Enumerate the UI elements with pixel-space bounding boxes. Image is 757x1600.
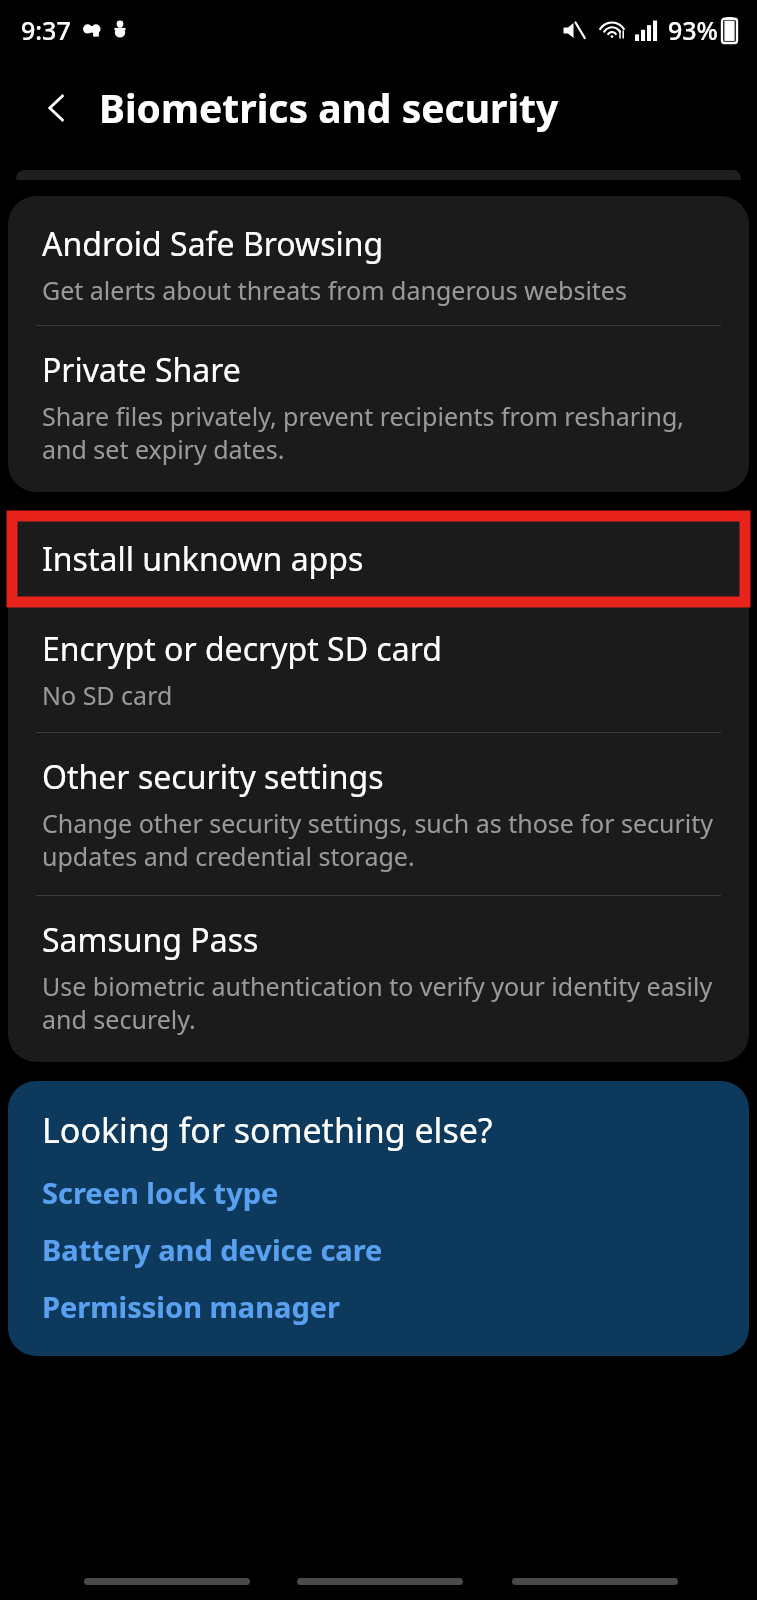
staticText: Battery and device care bbox=[42, 1230, 383, 1269]
staticText: Use biometric authentication to verify y… bbox=[42, 969, 715, 1036]
staticText: Looking for something else? bbox=[42, 1107, 493, 1153]
staticText: Get alerts about threats from dangerous … bbox=[42, 273, 627, 307]
staticText: Other security settings bbox=[42, 755, 384, 799]
button[interactable]: Android Safe Browsing bbox=[8, 196, 749, 325]
staticText: No SD card bbox=[42, 678, 173, 712]
staticText: Screen lock type bbox=[42, 1173, 279, 1212]
button[interactable]: Other security settings bbox=[8, 733, 749, 895]
staticText: Permission manager bbox=[42, 1287, 341, 1326]
staticText: Biometrics and security bbox=[99, 81, 559, 134]
button[interactable]: Permission manager bbox=[42, 1287, 715, 1326]
staticText: Private Share bbox=[42, 348, 241, 392]
button[interactable]: Encrypt or decrypt SD card bbox=[8, 607, 749, 732]
button[interactable]: Private Share bbox=[8, 326, 749, 492]
button[interactable]: Back bbox=[26, 77, 88, 139]
button[interactable]: Screen lock type bbox=[42, 1173, 715, 1212]
button[interactable]: Battery and device care bbox=[42, 1230, 715, 1269]
staticText: Change other security settings, such as … bbox=[42, 806, 715, 873]
staticText: Android Safe Browsing bbox=[42, 222, 384, 266]
staticText: 9:37 bbox=[21, 13, 71, 47]
staticText: Encrypt or decrypt SD card bbox=[42, 627, 442, 671]
button[interactable]: Install unknown apps bbox=[8, 511, 749, 607]
staticText: 93% bbox=[668, 13, 718, 47]
staticText: Share files privately, prevent recipient… bbox=[42, 399, 715, 466]
staticText: Samsung Pass bbox=[42, 918, 259, 962]
button[interactable]: Samsung Pass bbox=[8, 896, 749, 1062]
staticText: Install unknown apps bbox=[42, 537, 364, 581]
